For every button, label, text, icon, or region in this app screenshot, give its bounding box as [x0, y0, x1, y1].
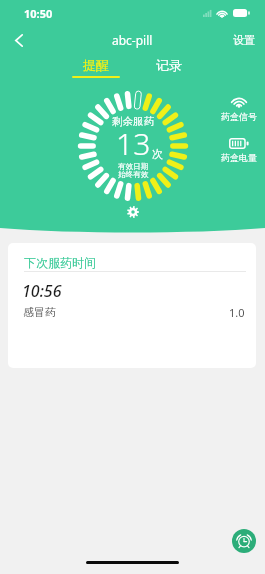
- staticText: 1.0: [229, 305, 245, 320]
- staticText: 设置: [233, 33, 255, 47]
- button[interactable]: 药盒电量: [221, 138, 257, 163]
- staticText: 提醒: [83, 57, 109, 73]
- staticText: 10:56: [22, 280, 62, 302]
- staticText: 有效日期: [118, 162, 149, 172]
- staticText: 感冒药: [23, 305, 56, 319]
- staticText: 药盒信号: [221, 111, 257, 122]
- staticText: abc-pill: [112, 32, 153, 48]
- button[interactable]: 药盒信号: [221, 97, 257, 122]
- staticText: 药盒电量: [221, 152, 257, 163]
- staticText: 13: [116, 123, 151, 164]
- button[interactable]: 提醒: [72, 57, 120, 78]
- staticText: 下次服药时间: [24, 255, 96, 270]
- button[interactable]: Alarm: [232, 529, 256, 553]
- staticText: 记录: [156, 57, 182, 73]
- button[interactable]: Settings: [124, 203, 142, 221]
- staticText: 始终有效: [118, 170, 149, 180]
- staticText: 10:50: [24, 6, 53, 21]
- staticText: 次: [152, 147, 163, 161]
- button[interactable]: 记录: [145, 57, 193, 78]
- staticText: 剩余服药: [112, 115, 154, 128]
- button[interactable]: 设置: [233, 33, 255, 47]
- button[interactable]: Back: [5, 26, 33, 54]
